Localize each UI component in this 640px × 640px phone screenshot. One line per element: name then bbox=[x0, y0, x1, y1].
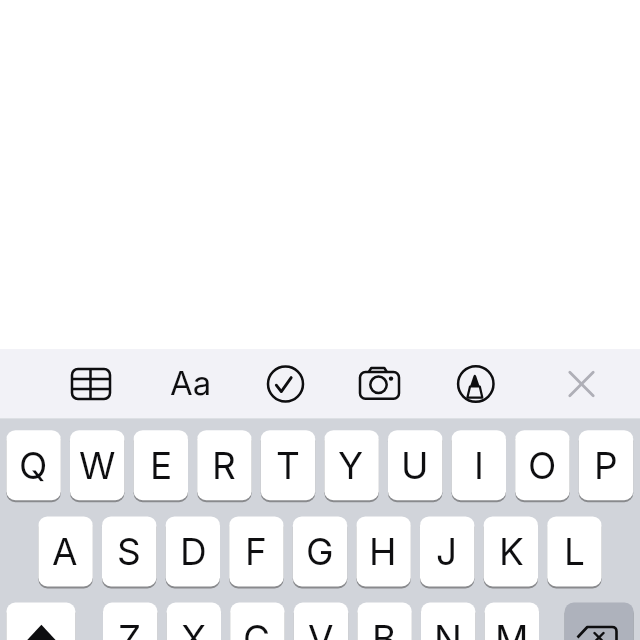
staticText: B bbox=[372, 616, 397, 640]
staticText: R bbox=[212, 443, 236, 488]
staticText: O bbox=[528, 443, 557, 488]
staticText: W bbox=[79, 443, 116, 488]
staticText: E bbox=[150, 443, 173, 488]
staticText: N bbox=[434, 616, 462, 640]
staticText: H bbox=[369, 529, 397, 574]
staticText: X bbox=[181, 616, 207, 640]
staticText: D bbox=[180, 529, 207, 574]
staticText: Y bbox=[338, 443, 364, 488]
staticText: F bbox=[245, 529, 267, 574]
staticText: M bbox=[495, 616, 529, 640]
staticText: S bbox=[117, 529, 141, 574]
staticText: L bbox=[564, 529, 585, 574]
staticText: G bbox=[306, 529, 334, 574]
staticText: Q bbox=[19, 443, 48, 488]
staticText: Aa bbox=[170, 363, 212, 403]
staticText: V bbox=[308, 616, 334, 640]
staticText: I bbox=[474, 443, 484, 488]
staticText: A bbox=[52, 529, 78, 574]
staticText: U bbox=[401, 443, 429, 488]
staticText: K bbox=[499, 529, 524, 574]
staticText: T bbox=[276, 443, 300, 488]
staticText: J bbox=[436, 529, 458, 574]
staticText: P bbox=[594, 443, 618, 488]
staticText: C bbox=[243, 616, 271, 640]
staticText: Z bbox=[118, 616, 142, 640]
